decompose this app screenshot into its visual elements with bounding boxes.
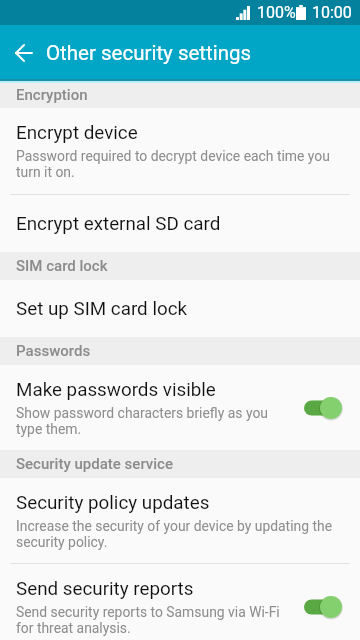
staticText: Security update service (16, 455, 173, 473)
staticText: Send security reports to Samsung via Wi-… (16, 604, 288, 636)
button[interactable]: Set up SIM card lock (0, 280, 360, 337)
staticText: Password required to decrypt device each… (16, 148, 344, 180)
staticText: 100% (257, 3, 296, 22)
button[interactable]: Security policy updates (0, 478, 360, 563)
staticText: Encrypt device (16, 122, 138, 144)
staticText: Security policy updates (16, 492, 210, 514)
staticText: Make passwords visible (16, 379, 216, 401)
staticText: Send security reports (16, 578, 194, 600)
staticText: Other security settings (46, 41, 252, 65)
button[interactable]: Encrypt device (0, 108, 360, 194)
button[interactable]: Navigate up (0, 25, 46, 81)
staticText: Encrypt external SD card (16, 213, 221, 235)
staticText: SIM card lock (16, 257, 108, 275)
staticText: Increase the security of your device by … (16, 518, 344, 550)
staticText: Passwords (16, 342, 91, 360)
staticText: Set up SIM card lock (16, 298, 188, 320)
staticText: Show password characters briefly as you … (16, 405, 288, 437)
button[interactable]: Send security reports (0, 564, 360, 640)
button[interactable]: Encrypt external SD card (0, 195, 360, 252)
button[interactable]: Make passwords visible (0, 365, 360, 450)
staticText: 10:00 (312, 3, 352, 22)
staticText: Encryption (16, 86, 88, 104)
